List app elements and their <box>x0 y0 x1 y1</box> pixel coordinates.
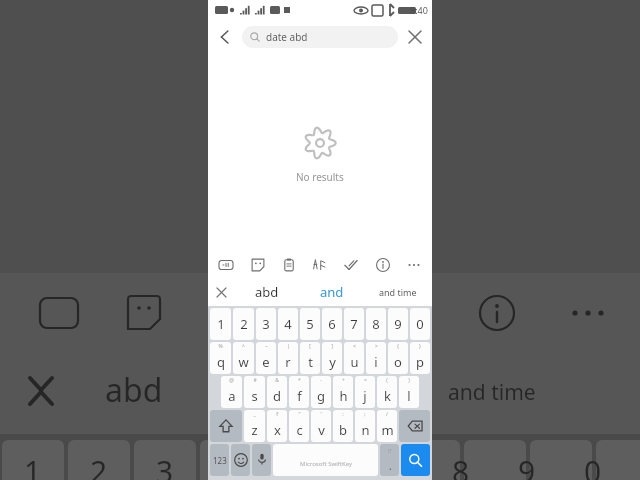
button[interactable]: Info <box>370 252 396 278</box>
button[interactable]: " <box>289 410 309 442</box>
staticText: and time <box>448 378 536 407</box>
staticText: v <box>318 421 325 439</box>
button[interactable]: 0 <box>410 308 430 340</box>
button[interactable]: & <box>267 376 287 408</box>
button[interactable]: # <box>244 376 265 408</box>
button[interactable]: 5 <box>300 308 320 340</box>
button[interactable]: 9 <box>388 308 408 340</box>
button[interactable]: _ <box>244 410 265 442</box>
button[interactable]: < <box>344 342 364 374</box>
button[interactable]: Microsoft SwiftKey <box>273 444 378 476</box>
button[interactable]: 3 <box>256 308 276 340</box>
staticText: = <box>364 377 367 384</box>
button[interactable]: 7 <box>344 308 364 340</box>
staticText: c <box>296 421 303 439</box>
button[interactable]: GIF <box>213 252 239 278</box>
button[interactable]: ] <box>322 342 342 374</box>
staticText: j <box>363 387 367 405</box>
button[interactable]: Shift <box>210 410 242 442</box>
button[interactable]: Translate <box>307 252 333 278</box>
button[interactable]: 6 <box>322 308 342 340</box>
button[interactable]: = <box>355 376 375 408</box>
staticText: + <box>342 377 345 384</box>
staticText: abd <box>255 283 279 301</box>
button[interactable]: : <box>333 410 353 442</box>
staticText: _ <box>253 411 256 418</box>
staticText: ; <box>364 411 366 418</box>
button[interactable]: * <box>289 376 309 408</box>
staticText: : <box>342 411 344 418</box>
button[interactable]: Tasks <box>338 252 364 278</box>
button[interactable]: ) <box>399 376 419 408</box>
button[interactable]: Stickers <box>245 252 271 278</box>
staticText: @ <box>229 377 234 384</box>
button[interactable]: 1 <box>210 308 231 340</box>
staticText: 9 <box>394 315 402 333</box>
staticText: 3 <box>156 451 174 480</box>
button[interactable]: ' <box>311 410 331 442</box>
staticText: f <box>297 387 302 405</box>
staticText: ^ <box>242 343 245 350</box>
button[interactable]: Emoji <box>231 444 250 476</box>
staticText: 1 <box>217 315 225 333</box>
staticText: and <box>320 283 344 301</box>
button[interactable]: Search <box>401 444 430 476</box>
staticText: - <box>320 377 322 384</box>
staticText: 1 <box>24 451 42 480</box>
button[interactable]: 4 <box>278 308 298 340</box>
button[interactable]: Clear <box>398 20 432 54</box>
button[interactable]: % <box>210 342 231 374</box>
button[interactable]: 123 <box>210 444 229 476</box>
button[interactable]: ₹ <box>267 410 287 442</box>
button[interactable]: } <box>410 342 430 374</box>
button[interactable]: date abd <box>242 26 398 48</box>
button[interactable]: and <box>299 278 364 306</box>
staticText: k <box>384 387 391 405</box>
button[interactable]: Back <box>208 20 242 54</box>
staticText: > <box>375 343 378 350</box>
button[interactable]: - <box>311 376 331 408</box>
button[interactable]: | <box>278 342 298 374</box>
staticText: w <box>238 353 249 371</box>
button[interactable]: !? <box>380 444 399 476</box>
staticText: ' <box>320 411 322 418</box>
staticText: % <box>218 343 223 350</box>
staticText: 0 <box>416 315 424 333</box>
button[interactable]: ; <box>355 410 375 442</box>
button[interactable]: abd <box>234 278 299 306</box>
button[interactable]: { <box>388 342 408 374</box>
staticText: o <box>394 353 402 371</box>
staticText: < <box>353 343 356 350</box>
button[interactable]: More <box>401 252 427 278</box>
staticText: l <box>407 387 411 405</box>
staticText: y <box>329 353 336 371</box>
button[interactable]: Backspace <box>399 410 430 442</box>
button[interactable]: ^ <box>233 342 254 374</box>
button[interactable]: ( <box>377 376 397 408</box>
staticText: 4 <box>284 315 292 333</box>
staticText: 8:40 <box>410 4 428 16</box>
button[interactable]: 8 <box>366 308 386 340</box>
staticText: 8 <box>452 451 470 480</box>
button[interactable]: > <box>366 342 386 374</box>
staticText: x <box>274 421 281 439</box>
staticText: / <box>386 411 388 418</box>
staticText: h <box>339 387 348 405</box>
button[interactable]: Voice input <box>252 444 271 476</box>
staticText: r <box>285 353 291 371</box>
button[interactable]: 2 <box>233 308 254 340</box>
button[interactable]: / <box>377 410 397 442</box>
button[interactable]: Close suggestions <box>208 278 234 306</box>
button[interactable]: ~ <box>256 342 276 374</box>
staticText: a <box>228 387 236 405</box>
button[interactable]: + <box>333 376 353 408</box>
button[interactable]: Clipboard <box>276 252 302 278</box>
staticText: 2 <box>240 315 248 333</box>
staticText: 123 <box>213 455 227 466</box>
button[interactable]: [ <box>300 342 320 374</box>
button[interactable]: and time <box>364 278 432 306</box>
staticText: ( <box>386 377 388 384</box>
staticText: p <box>416 353 424 371</box>
button[interactable]: @ <box>221 376 242 408</box>
staticText: u <box>350 353 359 371</box>
